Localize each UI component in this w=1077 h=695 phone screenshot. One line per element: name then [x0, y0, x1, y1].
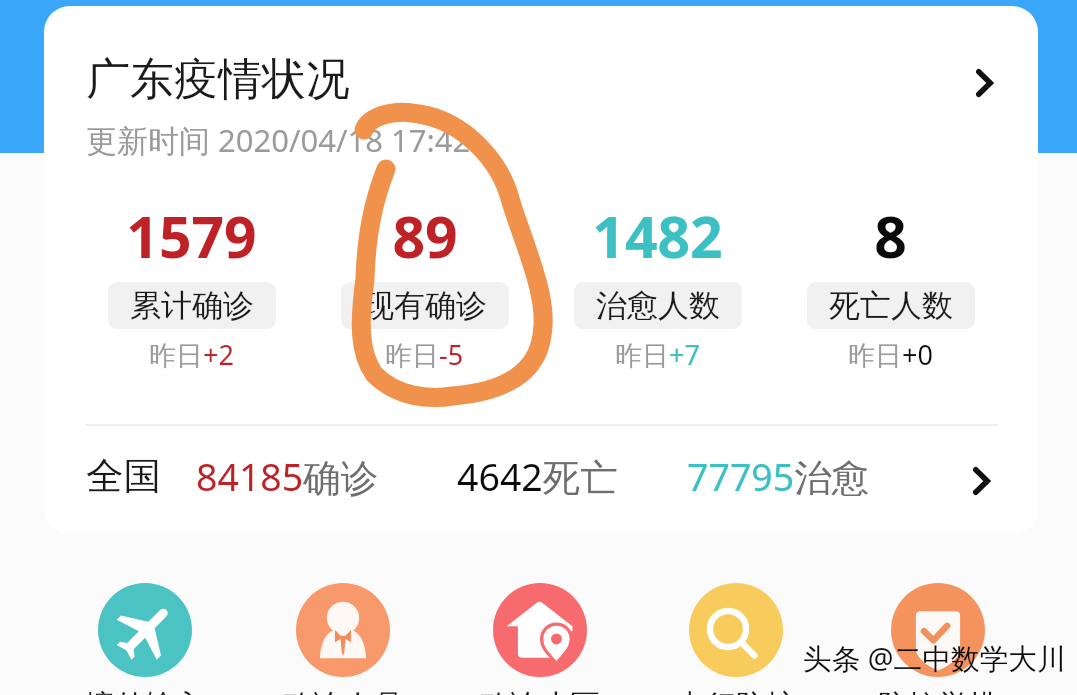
- staticText: 头条 @二中数学大川: [803, 638, 1066, 677]
- staticText: 昨日+7: [615, 336, 700, 373]
- staticText: 84185确诊: [196, 451, 379, 502]
- staticText: 昨日+0: [848, 336, 933, 373]
- button[interactable]: 确诊小区: [493, 583, 587, 677]
- staticText: 境外输入: [75, 687, 215, 695]
- staticText: 89: [392, 197, 458, 275]
- staticText: 出行防护: [666, 687, 806, 695]
- staticText: 昨日-5: [385, 336, 464, 373]
- staticText: 昨日+2: [149, 336, 234, 373]
- staticText: 1579: [126, 197, 257, 275]
- staticText: 8: [874, 197, 907, 275]
- button[interactable]: 全国: [44, 426, 1038, 526]
- button[interactable]: 1579: [75, 197, 308, 373]
- button[interactable]: 境外输入: [98, 583, 192, 677]
- staticText: 治愈人数: [596, 286, 720, 325]
- staticText: 累计确诊: [130, 286, 254, 325]
- button[interactable]: 8: [774, 197, 1007, 373]
- staticText: 1482: [592, 197, 723, 275]
- staticText: 全国: [86, 453, 161, 500]
- staticText: 防控举措: [868, 687, 1008, 695]
- button[interactable]: 1482: [541, 197, 774, 373]
- button[interactable]: 全国疫情详情: [951, 451, 1011, 511]
- button[interactable]: 89: [308, 197, 541, 373]
- staticText: 4642死亡: [457, 451, 618, 502]
- staticText: 死亡人数: [829, 286, 953, 325]
- staticText: 现有确诊: [363, 286, 487, 325]
- staticText: 77795治愈: [687, 451, 870, 502]
- button[interactable]: 确诊人员: [296, 583, 390, 677]
- button[interactable]: 查看详情: [954, 53, 1014, 113]
- staticText: 广东疫情状况: [86, 52, 350, 107]
- staticText: 更新时间 2020/04/18 17:42: [86, 119, 471, 161]
- button[interactable]: 防控举措: [891, 583, 985, 677]
- staticText: 确诊人员: [273, 687, 413, 695]
- button[interactable]: 出行防护: [689, 583, 783, 677]
- button[interactable]: 广东疫情状况: [44, 6, 1038, 166]
- staticText: 确诊小区: [470, 687, 610, 695]
